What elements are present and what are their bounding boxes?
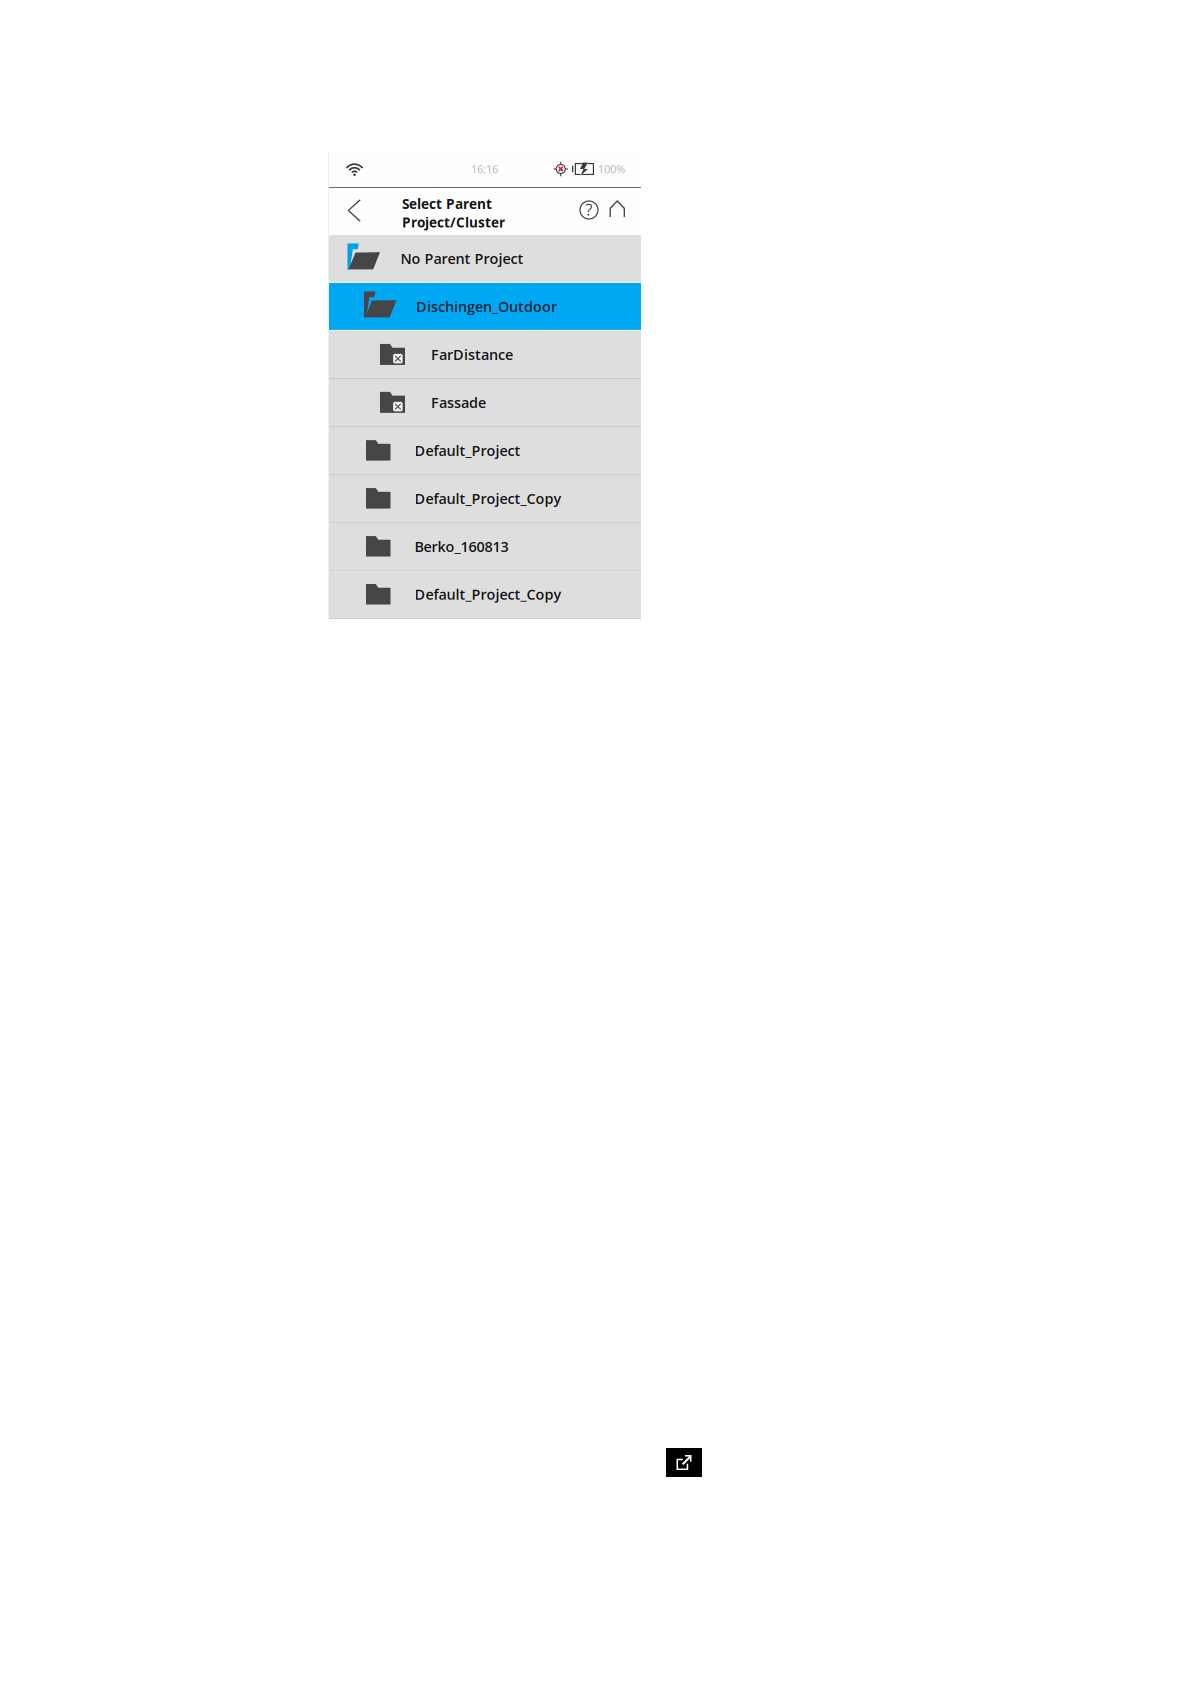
staticText: Default_Project <box>414 441 520 460</box>
button[interactable]: Default_Project <box>328 427 641 474</box>
staticText: Berko_160813 <box>414 536 508 556</box>
button[interactable]: Open in new window <box>666 1448 702 1477</box>
button[interactable]: Dischingen_Outdoor <box>328 283 641 330</box>
button[interactable]: Help <box>579 202 598 221</box>
staticText: Fassade <box>431 393 486 412</box>
button[interactable]: FarDistance <box>328 331 641 378</box>
button[interactable]: Default_Project_Copy <box>328 571 641 618</box>
button[interactable]: Fassade <box>328 379 641 426</box>
button[interactable]: Berko_160813 <box>328 523 641 570</box>
staticText: Select Parent <box>402 194 492 213</box>
staticText: ? <box>585 199 592 220</box>
staticText: 16:16 <box>471 161 498 177</box>
staticText: FarDistance <box>431 345 513 364</box>
staticText: Default_Project_Copy <box>414 488 561 508</box>
button[interactable]: Back <box>328 188 374 235</box>
staticText: Default_Project_Copy <box>414 584 561 604</box>
staticText: Project/Cluster <box>402 213 505 231</box>
staticText: No Parent Project <box>400 249 523 268</box>
staticText: Dischingen_Outdoor <box>416 297 557 316</box>
button[interactable]: Default_Project_Copy <box>328 475 641 522</box>
button[interactable]: No Parent Project <box>328 235 641 282</box>
button[interactable]: Home <box>609 203 625 220</box>
staticText: 100% <box>598 161 625 177</box>
